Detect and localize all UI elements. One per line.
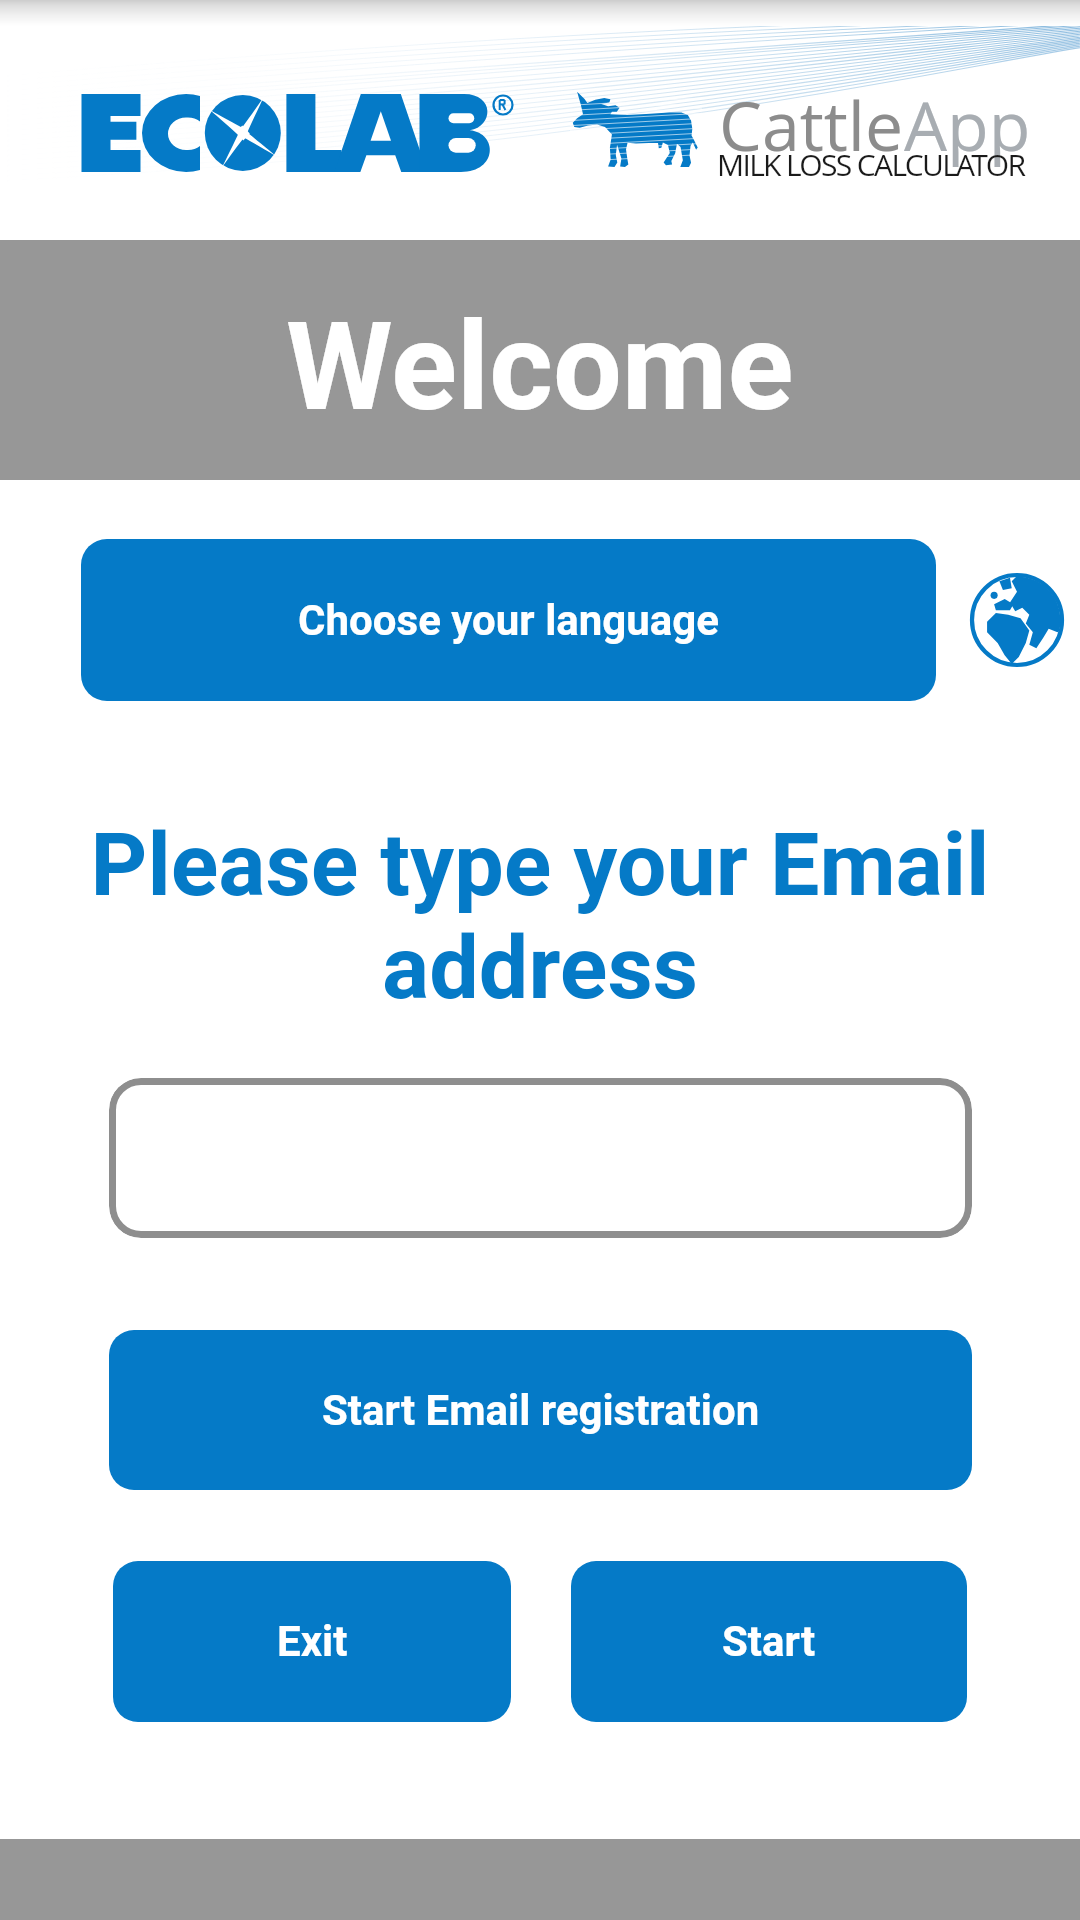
button[interactable]: Start <box>571 1561 967 1722</box>
staticText: Please type your Email address <box>46 813 1034 1019</box>
button[interactable]: Choose your language <box>81 539 936 701</box>
staticText: Choose your language <box>298 596 720 645</box>
button[interactable]: Choose language <box>970 573 1064 667</box>
staticText: Start Email registration <box>322 1386 760 1435</box>
staticText: App <box>904 78 1031 171</box>
staticText: MILK LOSS CALCULATOR <box>717 144 1025 185</box>
button[interactable] <box>109 1078 972 1238</box>
staticText: Exit <box>277 1617 348 1666</box>
staticText: Start <box>722 1617 816 1666</box>
staticText: Cattle <box>719 78 904 171</box>
button[interactable]: Exit <box>113 1561 511 1722</box>
staticText: Welcome <box>286 296 794 439</box>
button[interactable]: Start Email registration <box>109 1330 972 1490</box>
